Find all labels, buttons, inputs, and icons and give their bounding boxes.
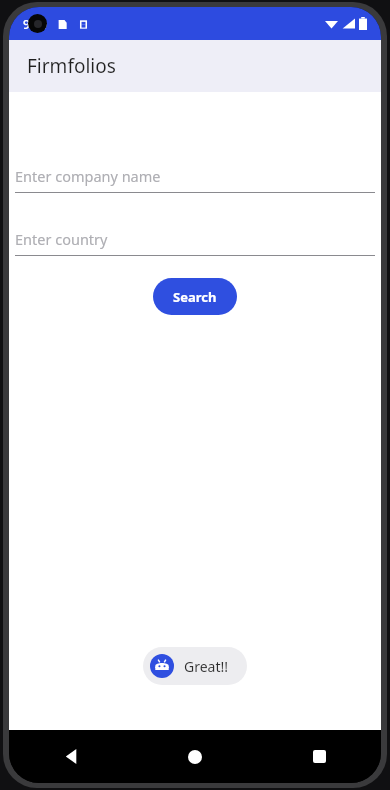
staticText: Enter company name (15, 166, 161, 186)
button[interactable]: Search (153, 278, 237, 315)
button[interactable]: Back (9, 730, 133, 783)
button[interactable]: Enter country (15, 227, 375, 256)
button[interactable]: Enter company name (15, 164, 375, 193)
staticText: Firmfolios (27, 53, 116, 79)
staticText: 9:00 (23, 16, 47, 32)
staticText: Search (173, 288, 217, 306)
staticText: Great!! (184, 657, 229, 676)
staticText: Enter country (15, 229, 108, 249)
button[interactable]: Recent apps (257, 730, 381, 783)
button[interactable]: Great!! (143, 647, 247, 685)
button[interactable]: Home (133, 730, 257, 783)
